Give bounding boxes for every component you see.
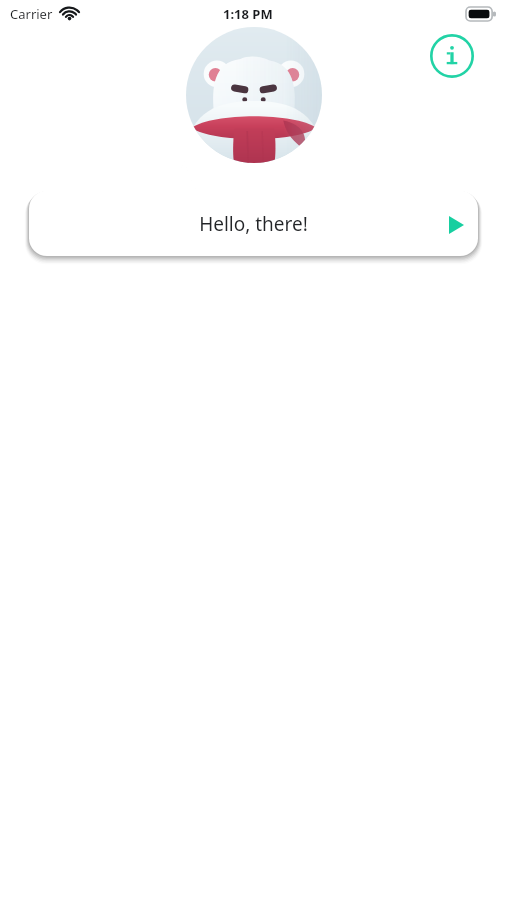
staticText: 1:18 PM — [223, 5, 273, 23]
button[interactable]: Play — [436, 205, 476, 245]
button[interactable]: Info — [428, 32, 476, 80]
button[interactable]: Hello, there! — [29, 163, 478, 260]
other: Polar bear avatar — [186, 27, 322, 163]
staticText: Carrier — [10, 5, 53, 23]
staticText: Hello, there! — [29, 211, 478, 239]
